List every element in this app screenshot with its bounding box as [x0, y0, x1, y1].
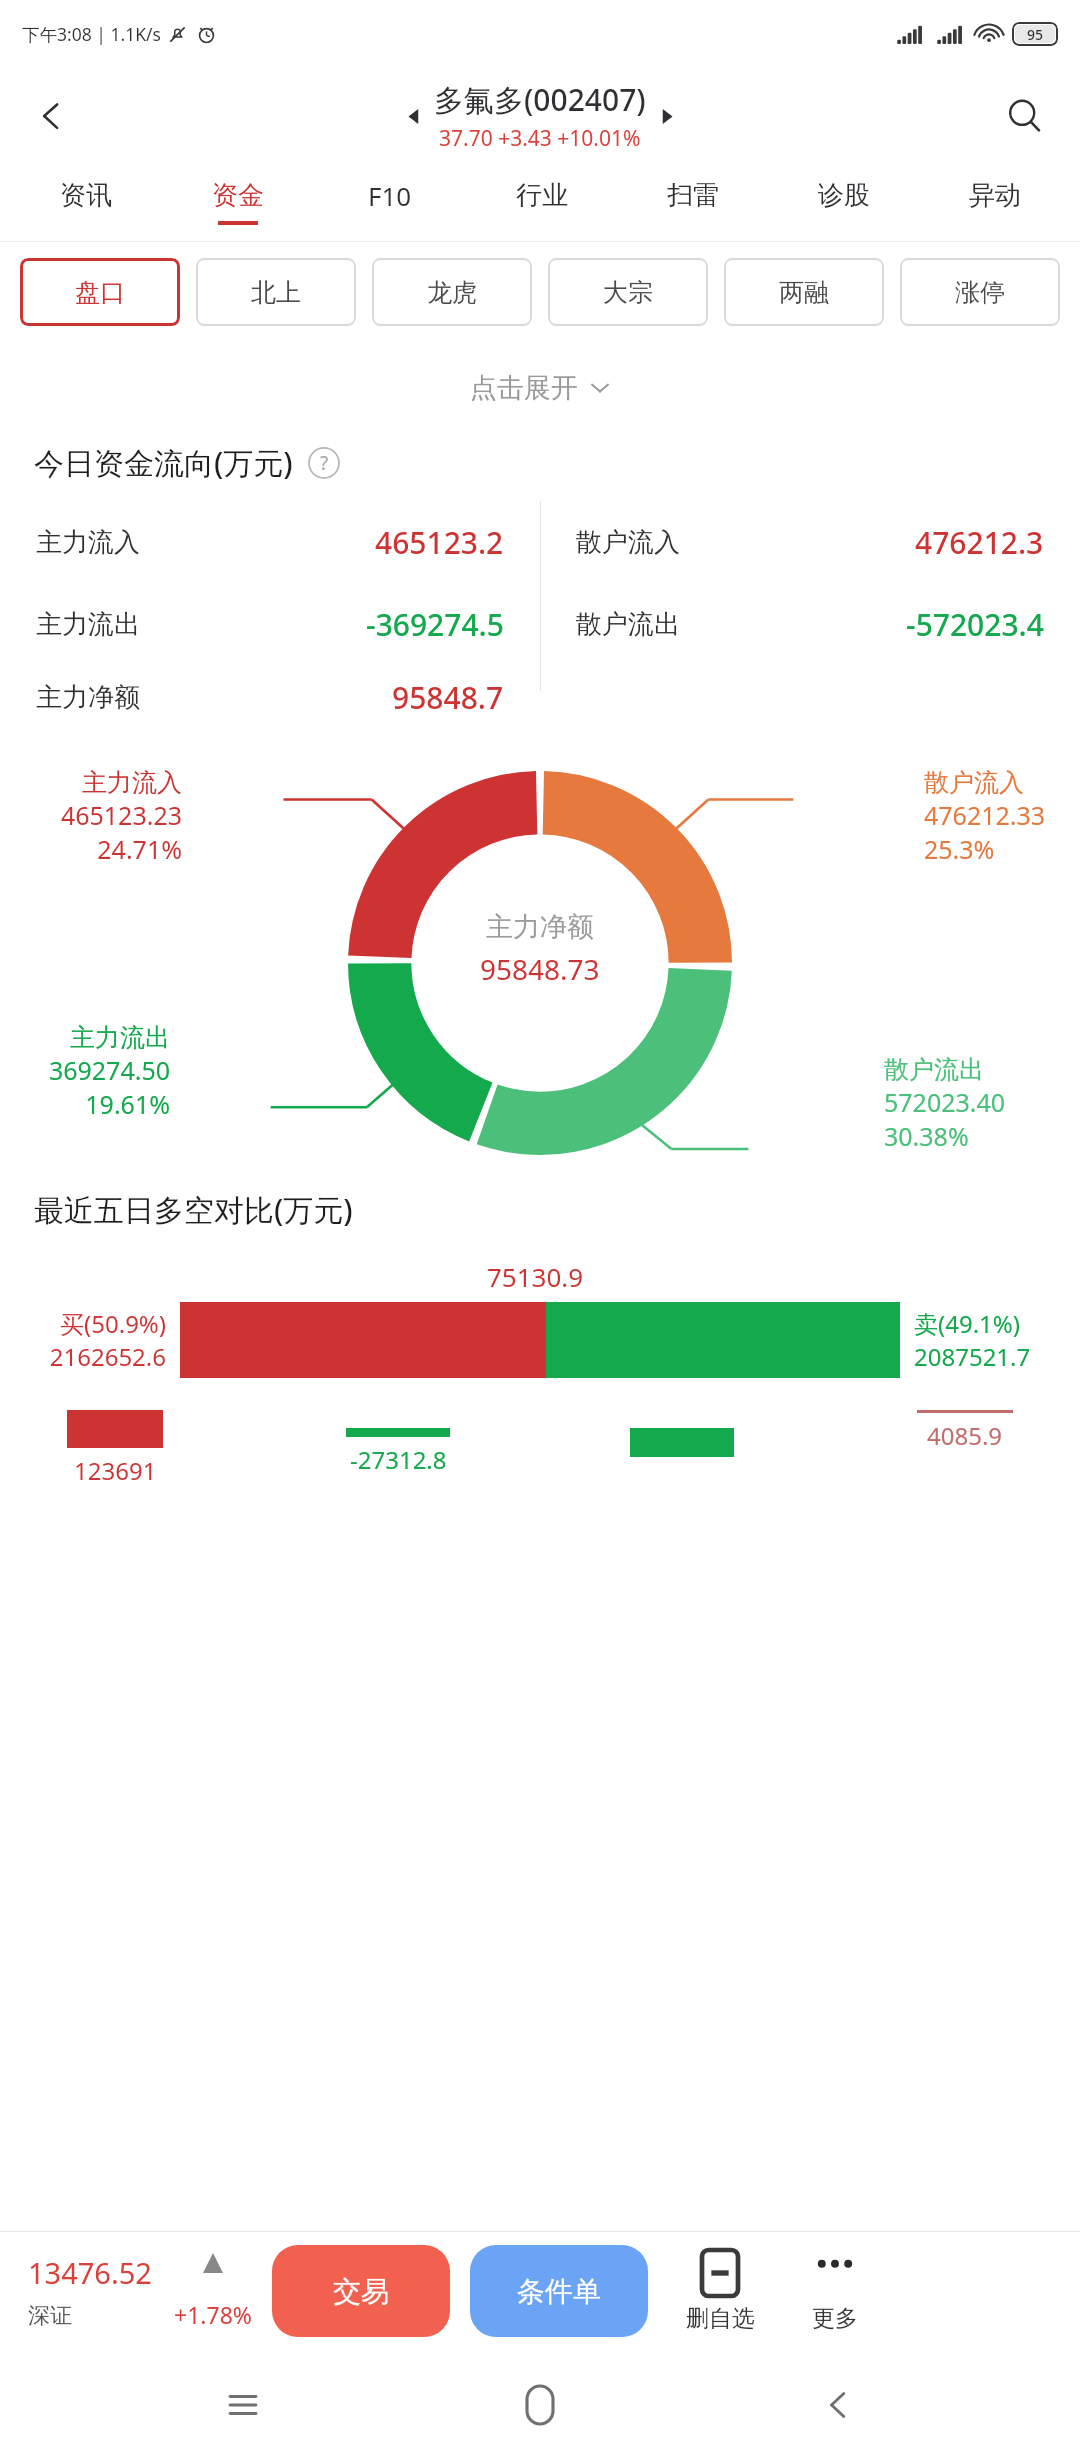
button[interactable]: Back — [783, 2350, 893, 2460]
button[interactable]: Home — [485, 2350, 595, 2460]
button[interactable]: F10 — [314, 163, 466, 241]
button[interactable]: Next stock — [646, 96, 686, 136]
button[interactable]: 大宗 — [548, 258, 708, 326]
staticText: 476212.33 — [924, 798, 1046, 832]
staticText: 2162652.6 — [49, 1340, 166, 1373]
staticText: 主力流出 — [70, 1022, 170, 1053]
staticText: 扫雷 — [667, 179, 719, 212]
staticText: 主力净额 — [36, 681, 140, 714]
button[interactable]: 行业 — [466, 163, 617, 241]
staticText: 北上 — [251, 277, 301, 308]
staticText: 95848.73 — [480, 950, 600, 988]
staticText: 95848.7 — [392, 677, 504, 718]
staticText: 下午3:08 | 1.1K/s — [22, 22, 161, 46]
staticText: 476212.3 — [915, 522, 1044, 563]
button[interactable]: 条件单 — [470, 2245, 648, 2337]
staticText: 465123.2 — [375, 522, 504, 563]
button[interactable]: 更多 — [780, 2250, 890, 2333]
button[interactable]: 删自选 — [660, 2250, 780, 2333]
staticText: -572023.4 — [906, 604, 1044, 645]
button[interactable]: 扫雷 — [617, 163, 768, 241]
staticText: 主力净额 — [486, 910, 594, 944]
button[interactable]: 资讯 — [10, 163, 162, 241]
staticText: 两融 — [779, 277, 829, 308]
staticText: 条件单 — [517, 2274, 601, 2309]
staticText: +1.78% — [174, 2299, 252, 2330]
button[interactable]: 两融 — [724, 258, 884, 326]
staticText: 盘口 — [75, 277, 125, 308]
button[interactable]: Search — [994, 85, 1056, 147]
button[interactable]: 13476.52 — [28, 2253, 152, 2330]
staticText: 删自选 — [686, 2304, 755, 2333]
staticText: -369274.5 — [366, 604, 504, 645]
button[interactable]: Back — [20, 85, 82, 147]
staticText: 散户流出 — [576, 608, 680, 641]
staticText: 主力流出 — [36, 608, 140, 641]
staticText: 75130.9 — [487, 1259, 584, 1294]
staticText: 24.71% — [97, 832, 182, 866]
staticText: 主力流入 — [82, 767, 182, 798]
staticText: 2087521.7 — [914, 1340, 1031, 1373]
button[interactable]: 北上 — [196, 258, 356, 326]
button[interactable]: 龙虎 — [372, 258, 532, 326]
staticText: 散户流入 — [924, 767, 1024, 798]
button[interactable]: Recent apps — [188, 2350, 298, 2460]
button[interactable]: 诊股 — [768, 163, 919, 241]
button[interactable]: 点击展开 — [0, 340, 1080, 436]
staticText: 异动 — [969, 179, 1021, 212]
staticText: 点击展开 — [470, 371, 578, 405]
staticText: 行业 — [516, 179, 568, 212]
staticText: 19.61% — [85, 1087, 170, 1121]
staticText: ? — [320, 450, 329, 476]
staticText: 涨停 — [955, 277, 1005, 308]
staticText: 最近五日多空对比(万元) — [34, 1189, 353, 1230]
staticText: F10 — [368, 178, 412, 213]
staticText: 更多 — [812, 2304, 858, 2333]
staticText: 572023.40 — [884, 1085, 1006, 1119]
staticText: 25.3% — [924, 832, 995, 866]
staticText: 13476.52 — [28, 2253, 152, 2292]
staticText: 交易 — [333, 2274, 389, 2309]
button[interactable]: 涨停 — [900, 258, 1060, 326]
staticText: -27312.8 — [350, 1443, 447, 1476]
staticText: 今日资金流向(万元) — [34, 442, 293, 483]
button[interactable]: Previous stock — [394, 96, 434, 136]
staticText: 多氟多(002407) — [434, 79, 646, 120]
button[interactable]: Help — [307, 446, 341, 480]
button[interactable]: 盘口 — [20, 258, 180, 326]
staticText: 龙虎 — [427, 277, 477, 308]
staticText: 诊股 — [818, 179, 870, 212]
staticText: 4085.9 — [927, 1419, 1003, 1452]
staticText: 资讯 — [60, 179, 112, 212]
staticText: 95 — [1027, 25, 1044, 43]
staticText: 买(50.9%) — [60, 1307, 166, 1340]
staticText: 散户流入 — [576, 526, 680, 559]
button[interactable]: 资金 — [162, 163, 314, 241]
staticText: 369274.50 — [48, 1053, 170, 1087]
staticText: 散户流出 — [884, 1054, 984, 1085]
staticText: 30.38% — [884, 1119, 969, 1153]
button[interactable]: 异动 — [919, 163, 1070, 241]
staticText: 465123.23 — [60, 798, 182, 832]
staticText: 123691 — [74, 1454, 157, 1487]
staticText: 资金 — [212, 179, 264, 212]
button[interactable]: 交易 — [272, 2245, 450, 2337]
staticText: 大宗 — [603, 277, 653, 308]
staticText: 主力流入 — [36, 526, 140, 559]
staticText: 卖(49.1%) — [914, 1307, 1020, 1340]
staticText: 深证 — [28, 2302, 72, 2330]
staticText: 37.70 +3.43 +10.01% — [439, 124, 641, 153]
